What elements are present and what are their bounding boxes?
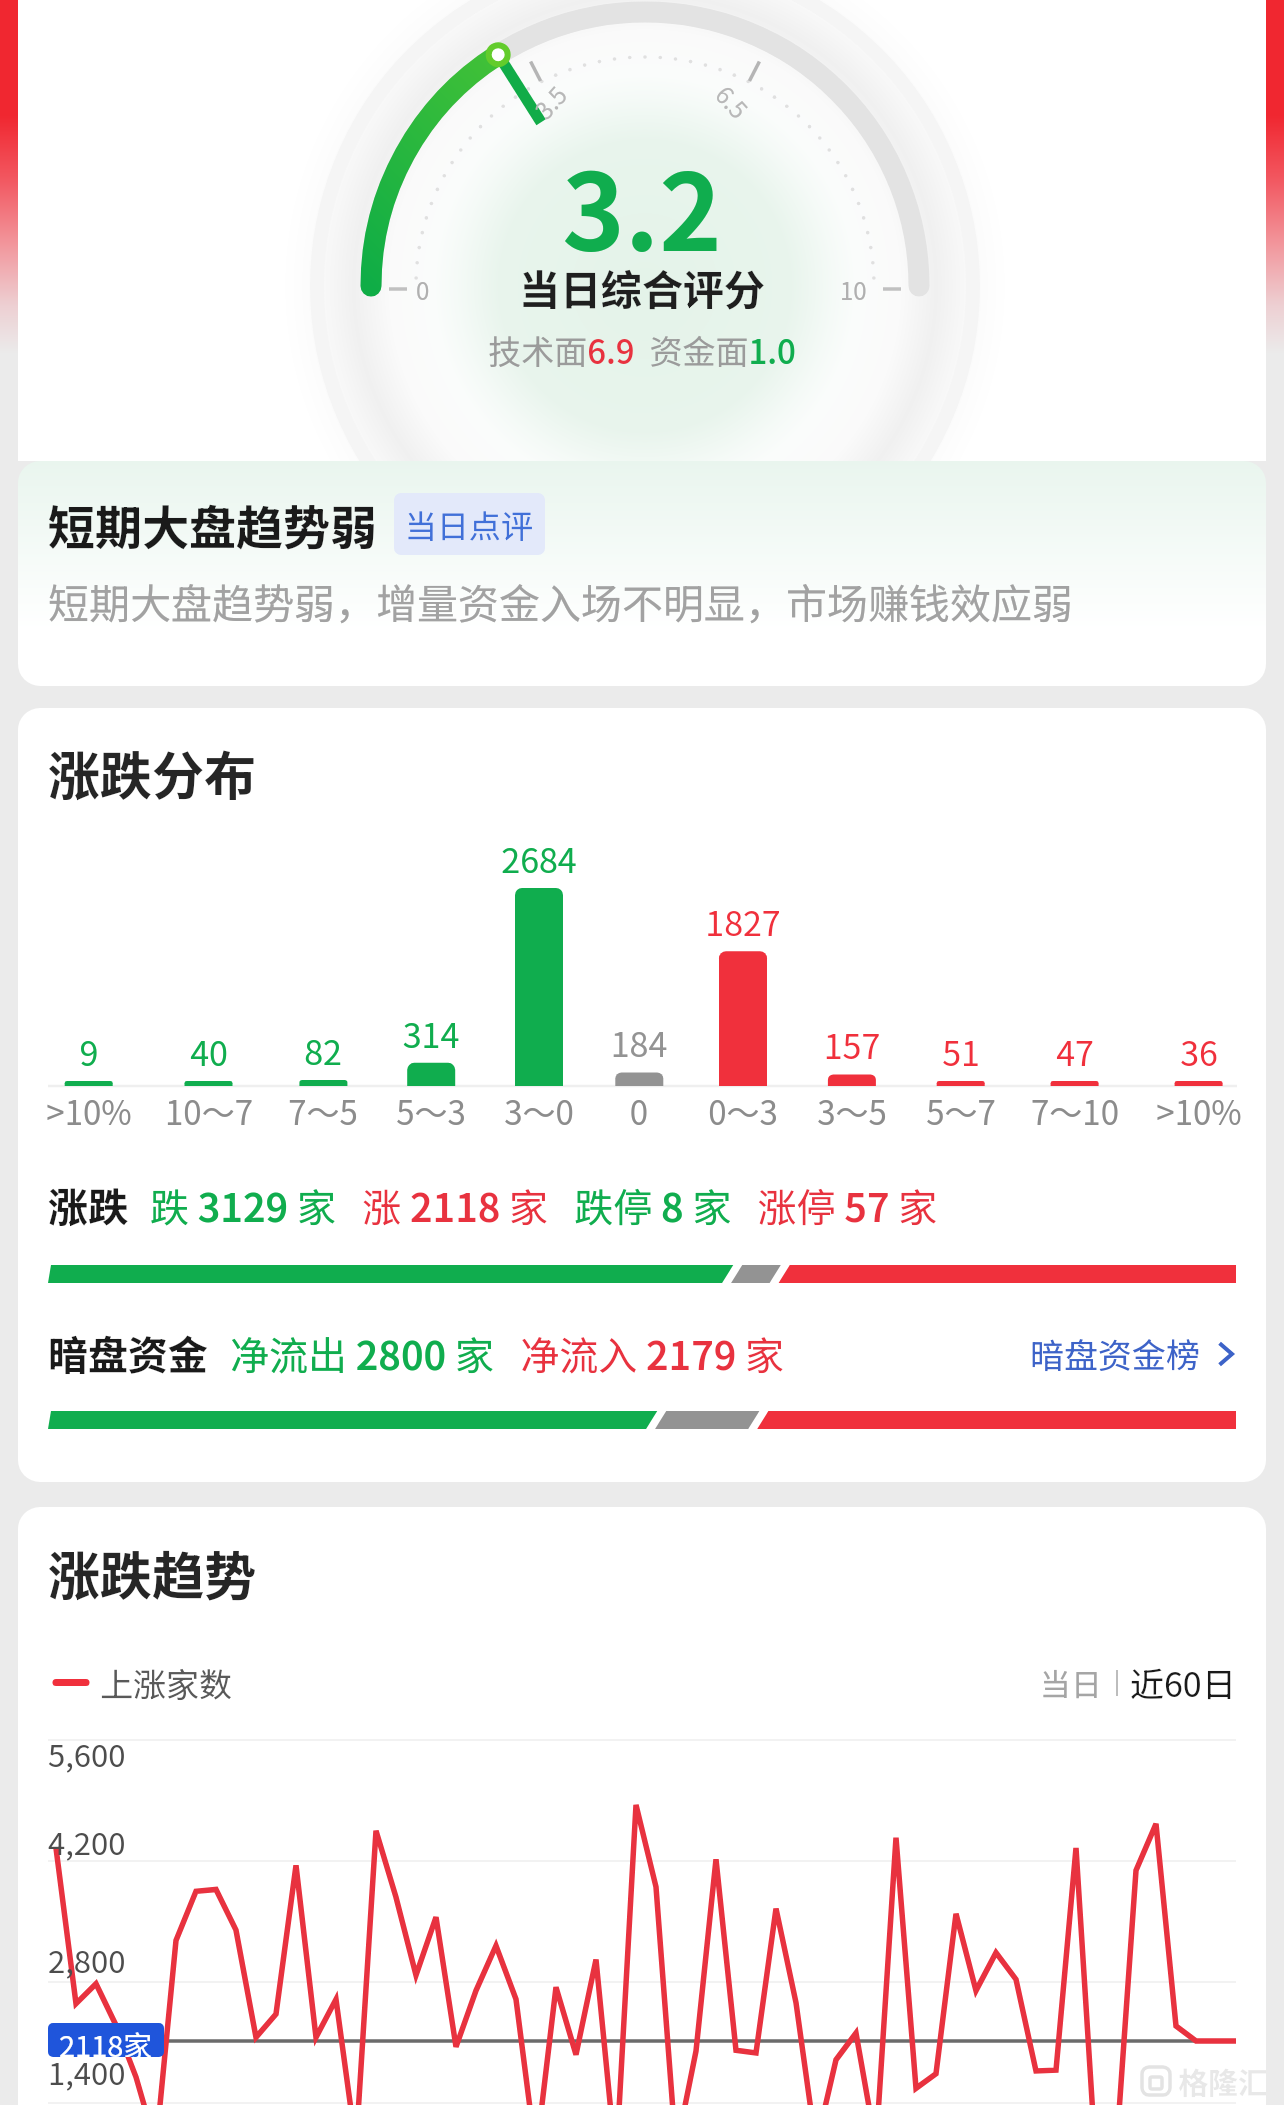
staticText: 涨跌 (48, 1176, 128, 1234)
staticText: 技术面6.9 资金面1.0 (0, 326, 1284, 374)
staticText: 短期大盘趋势弱 (48, 490, 377, 558)
button[interactable]: 涨跌趋势 (18, 1507, 1266, 2105)
staticText: 7～5 (253, 1087, 393, 1135)
staticText: 0 (416, 272, 430, 307)
staticText: 6.5 (709, 77, 757, 126)
staticText: 1,400 (48, 2049, 126, 2094)
staticText: 47 (1005, 1027, 1145, 1076)
staticText: 157 (782, 1020, 922, 1069)
staticText: 当日综合评分 (0, 257, 1284, 316)
staticText: 314 (361, 1009, 501, 1058)
staticText: 82 (253, 1026, 393, 1075)
staticText: 上涨家数 (100, 1659, 232, 1707)
staticText: 跌 3129 家 涨 2118 家 跌停 8 家 涨停 57 家 (150, 1177, 938, 1233)
staticText: 51 (891, 1027, 1031, 1076)
staticText: 涨跌分布 (48, 735, 257, 810)
staticText: 10～7 (139, 1087, 279, 1135)
staticText: 近60日 (1130, 1658, 1236, 1707)
staticText: 3～5 (782, 1087, 922, 1135)
staticText: 2118家 (59, 2023, 153, 2057)
staticText: 5,600 (48, 1731, 126, 1776)
button[interactable]: 暗盘资金榜 (1030, 1329, 1236, 1378)
staticText: 格隆汇 (1178, 2059, 1266, 2102)
other: 暗盘资金榜 (1216, 1336, 1236, 1372)
staticText: 1827 (673, 897, 813, 946)
staticText: 36 (1129, 1027, 1266, 1076)
staticText: 暗盘资金榜 (1030, 1329, 1200, 1378)
button[interactable]: 短期大盘趋势弱 (18, 461, 1266, 686)
staticText: 净流出 2800 家 净流入 2179 家 (230, 1325, 785, 1381)
staticText: 暗盘资金 (48, 1324, 208, 1382)
staticText: >10% (19, 1087, 159, 1135)
staticText: 7～10 (1005, 1087, 1145, 1135)
staticText: 当日 (1040, 1660, 1102, 1705)
staticText: 184 (569, 1018, 709, 1067)
staticText: 2,800 (48, 1937, 126, 1982)
staticText: >10% (1129, 1087, 1266, 1135)
staticText: 0～3 (673, 1087, 813, 1135)
staticText: 4,200 (48, 1819, 126, 1864)
staticText: 3.5 (526, 77, 574, 126)
staticText: 10 (840, 272, 867, 307)
button[interactable]: 近60日 (1126, 1652, 1236, 1713)
staticText: 0 (569, 1087, 709, 1135)
button[interactable]: 当日 (1036, 1654, 1106, 1711)
staticText: 5～7 (891, 1087, 1031, 1135)
staticText: 短期大盘趋势弱，增量资金入场不明显，市场赚钱效应弱 (48, 571, 1073, 630)
staticText: 40 (139, 1027, 279, 1076)
staticText: 2684 (469, 834, 609, 883)
staticText: 3～0 (469, 1087, 609, 1135)
staticText: 3.2 (0, 128, 1284, 281)
staticText: 涨跌趋势 (48, 1535, 257, 1610)
staticText: 9 (19, 1027, 159, 1076)
staticText: 5～3 (361, 1087, 501, 1135)
button[interactable]: 涨跌分布 (18, 708, 1266, 1482)
button[interactable]: 当日综合评分 3.2 (0, 0, 1284, 461)
staticText: 当日点评 (405, 501, 534, 547)
